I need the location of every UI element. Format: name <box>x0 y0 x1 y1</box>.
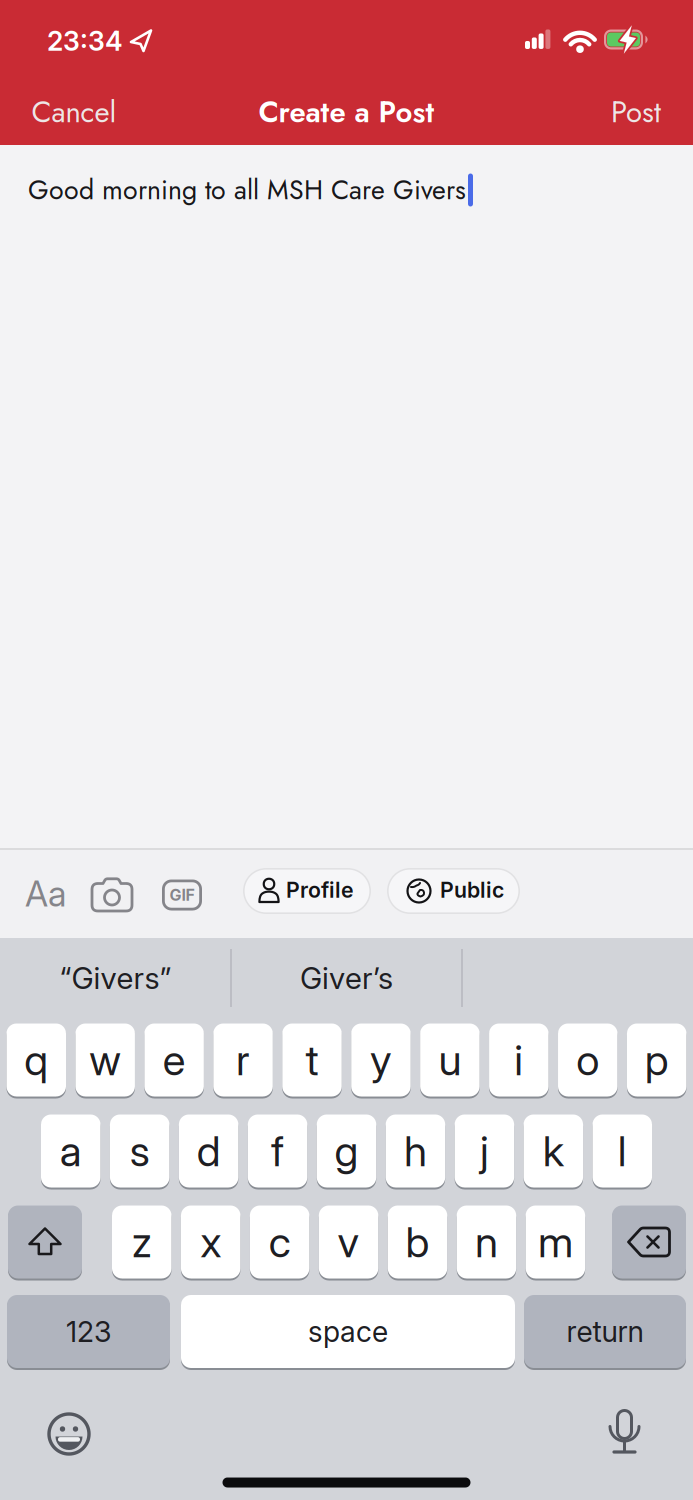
staticText: Aa <box>25 873 66 915</box>
staticText: Post <box>611 91 661 133</box>
button[interactable]: e <box>144 1023 204 1098</box>
staticText: GIF <box>169 885 194 905</box>
button[interactable]: Text format <box>15 864 75 924</box>
button[interactable]: 123 <box>7 1295 170 1370</box>
staticText: s <box>130 1126 150 1176</box>
staticText: b <box>405 1217 429 1267</box>
staticText: r <box>236 1035 250 1085</box>
button[interactable]: p <box>627 1023 686 1098</box>
staticText: space <box>308 1314 388 1349</box>
staticText: l <box>618 1126 627 1176</box>
staticText: t <box>305 1035 318 1085</box>
button[interactable]: Public <box>387 868 520 914</box>
button[interactable]: h <box>386 1114 445 1189</box>
button[interactable]: c <box>250 1205 309 1280</box>
staticText: q <box>24 1035 48 1085</box>
staticText: v <box>338 1217 360 1267</box>
button[interactable]: k <box>524 1114 583 1189</box>
staticText: Cancel <box>31 91 116 133</box>
button[interactable]: Emoji <box>47 1412 91 1456</box>
button[interactable]: n <box>457 1205 516 1280</box>
staticText: “Givers” <box>59 960 171 996</box>
staticText: z <box>132 1217 152 1267</box>
staticText: Giver’s <box>300 960 393 996</box>
staticText: c <box>269 1217 291 1267</box>
staticText: g <box>334 1126 358 1176</box>
button[interactable]: w <box>75 1023 135 1098</box>
staticText: y <box>370 1035 392 1085</box>
button[interactable]: Giver’s <box>246 946 446 1010</box>
staticText: k <box>543 1126 564 1176</box>
button[interactable]: d <box>179 1114 238 1189</box>
button[interactable]: a <box>41 1114 100 1189</box>
button[interactable]: l <box>592 1114 652 1189</box>
staticText: return <box>566 1314 643 1349</box>
staticText: h <box>404 1126 427 1176</box>
staticText: 23:34 <box>47 25 123 57</box>
button[interactable]: GIF <box>162 879 202 910</box>
button[interactable]: q <box>6 1023 66 1098</box>
button[interactable]: space <box>181 1295 515 1370</box>
staticText: o <box>576 1035 599 1085</box>
button[interactable]: r <box>213 1023 273 1098</box>
staticText: 123 <box>66 1314 111 1349</box>
button[interactable]: z <box>112 1205 171 1280</box>
button[interactable]: u <box>420 1023 480 1098</box>
button[interactable]: Dictation <box>607 1410 641 1456</box>
button[interactable]: Shift <box>8 1205 82 1280</box>
button[interactable]: Post <box>581 81 691 143</box>
staticText: Public <box>440 877 504 903</box>
button[interactable]: Profile <box>243 868 371 914</box>
staticText: Profile <box>286 877 354 903</box>
staticText: x <box>200 1217 221 1267</box>
staticText: Good morning to all MSH Care Givers <box>28 171 466 209</box>
staticText: m <box>538 1217 573 1267</box>
staticText: w <box>89 1035 121 1085</box>
button[interactable]: v <box>319 1205 378 1280</box>
button[interactable]: o <box>558 1023 617 1098</box>
staticText: e <box>163 1035 186 1085</box>
button[interactable]: Delete <box>612 1205 686 1280</box>
button[interactable]: j <box>455 1114 514 1189</box>
staticText: u <box>438 1035 461 1085</box>
button[interactable]: Cancel <box>0 81 149 143</box>
button[interactable]: x <box>181 1205 240 1280</box>
staticText: i <box>514 1035 523 1085</box>
staticText: n <box>475 1217 498 1267</box>
staticText: j <box>480 1126 489 1176</box>
button[interactable]: f <box>248 1114 307 1189</box>
button[interactable]: i <box>489 1023 549 1098</box>
staticText: a <box>60 1126 82 1176</box>
button[interactable]: m <box>526 1205 585 1280</box>
staticText: Create a Post <box>258 91 434 133</box>
button[interactable]: return <box>524 1295 686 1370</box>
staticText: p <box>645 1035 669 1085</box>
button[interactable]: y <box>351 1023 411 1098</box>
staticText: f <box>271 1126 284 1176</box>
staticText: d <box>197 1126 221 1176</box>
button[interactable]: t <box>282 1023 342 1098</box>
button[interactable]: g <box>317 1114 376 1189</box>
button[interactable]: b <box>388 1205 447 1280</box>
button[interactable]: Camera <box>91 878 133 912</box>
button[interactable]: s <box>110 1114 169 1189</box>
button[interactable]: “Givers” <box>15 946 215 1010</box>
